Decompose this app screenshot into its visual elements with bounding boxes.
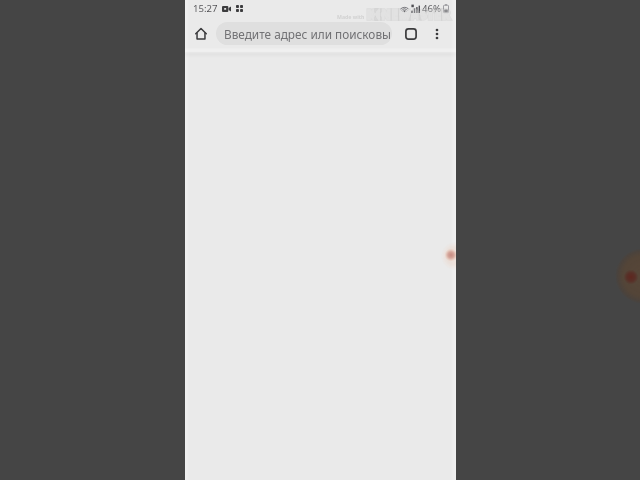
staticText: 46%: [422, 2, 441, 15]
button[interactable]: Tabs: [398, 20, 424, 48]
button[interactable]: Home: [188, 19, 214, 47]
button[interactable]: More options: [426, 20, 447, 48]
button[interactable]: Введите адрес или поисковый запрос: [216, 22, 392, 45]
staticText: 15:27: [193, 2, 218, 15]
staticText: KINEMASTER: [367, 6, 451, 23]
staticText: Введите адрес или поисковый запрос: [224, 26, 391, 42]
staticText: Made with: [337, 13, 365, 20]
staticText: KINEMASTER: [367, 6, 451, 23]
